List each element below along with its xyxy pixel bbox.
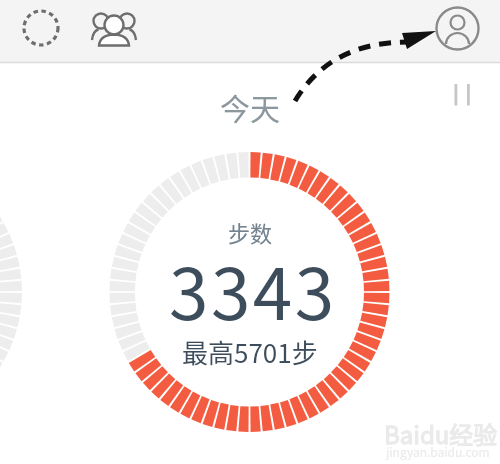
staticText: 今天 — [220, 85, 280, 128]
button[interactable] — [92, 7, 136, 51]
button[interactable] — [20, 7, 62, 49]
staticText: Baidu经验 — [384, 416, 498, 451]
button[interactable] — [446, 78, 478, 110]
staticText: jingyan.baidu.com — [386, 443, 490, 460]
staticText: 3343 — [169, 238, 337, 341]
button[interactable] — [434, 5, 481, 52]
staticText: 步数 — [228, 216, 273, 248]
staticText: 最高5701步 — [182, 333, 318, 371]
